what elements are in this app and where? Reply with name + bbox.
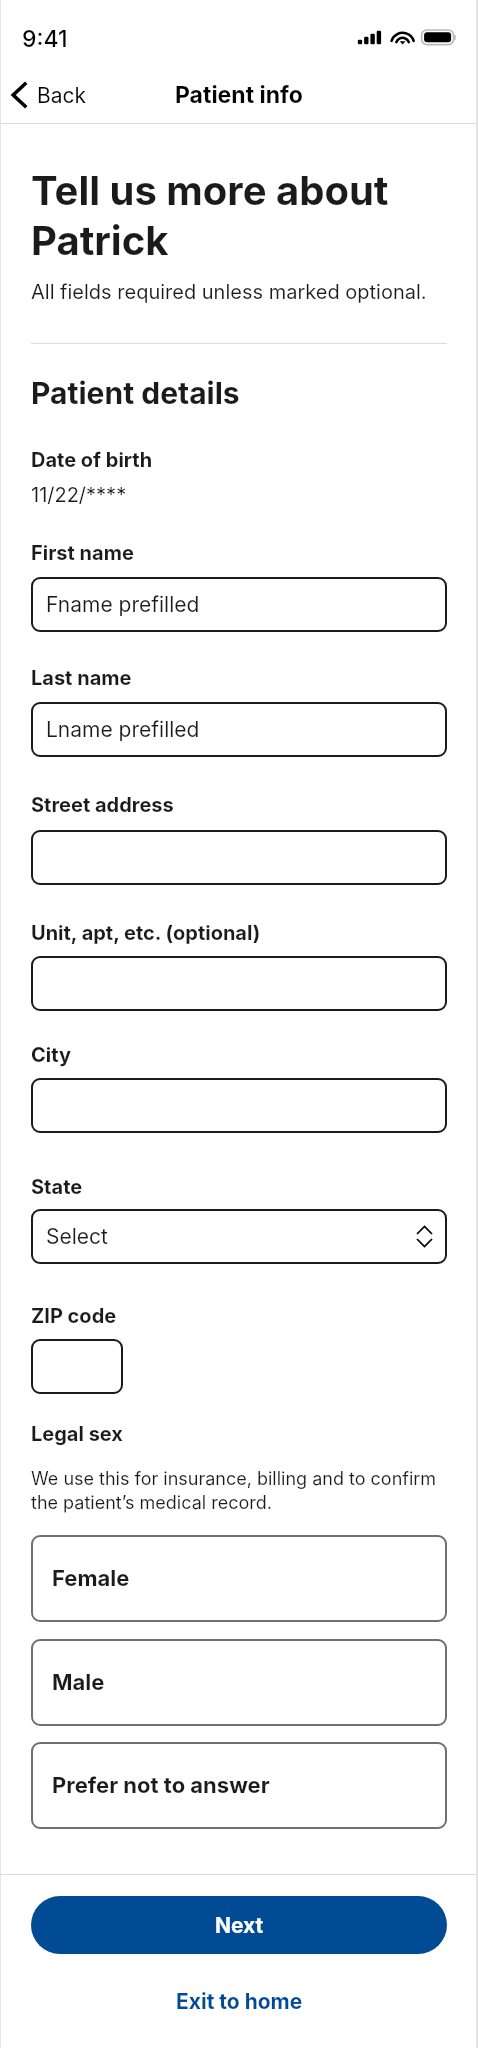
staticText: Next	[215, 1913, 264, 1938]
button[interactable]: Lname prefilled	[31, 702, 447, 757]
staticText: Female	[52, 1565, 130, 1592]
staticText: Lname prefilled	[46, 717, 200, 742]
staticText: All fields required unless marked option…	[31, 280, 427, 304]
staticText: Legal sex	[31, 1422, 123, 1446]
staticText: We use this for insurance, billing and t…	[31, 1468, 447, 1514]
staticText: City	[31, 1043, 72, 1067]
button[interactable]	[31, 956, 447, 1011]
staticText: Last name	[31, 666, 132, 690]
button[interactable]	[31, 1078, 447, 1133]
button[interactable]	[31, 1339, 123, 1394]
staticText: Unit, apt, etc. (optional)	[31, 921, 261, 945]
staticText: Fname prefilled	[46, 592, 200, 617]
other: Back	[12, 82, 27, 108]
staticText: Select	[46, 1224, 108, 1249]
staticText: Patient details	[31, 375, 240, 411]
staticText: 11/22/****	[31, 483, 127, 507]
button[interactable]: Select	[31, 1209, 447, 1264]
button[interactable]: Prefer not to answer	[31, 1742, 447, 1829]
button[interactable]: Male	[31, 1639, 447, 1726]
staticText: ZIP code	[31, 1304, 117, 1328]
staticText: Street address	[31, 793, 174, 817]
button[interactable]	[31, 830, 447, 885]
button[interactable]: Exit to home	[31, 1954, 447, 2048]
staticText: Patient info	[175, 81, 303, 109]
staticText: First name	[31, 541, 134, 565]
staticText: Back	[37, 83, 87, 108]
button[interactable]: Back	[0, 74, 99, 116]
staticText: Exit to home	[176, 1989, 303, 2014]
staticText: State	[31, 1175, 83, 1199]
button[interactable]: Fname prefilled	[31, 577, 447, 632]
staticText: Date of birth	[31, 448, 153, 472]
staticText: 9:41	[22, 25, 68, 53]
button[interactable]: Female	[31, 1535, 447, 1622]
staticText: Prefer not to answer	[52, 1772, 270, 1799]
staticText: Male	[52, 1669, 105, 1696]
staticText: Tell us more about Patrick	[31, 166, 447, 265]
button[interactable]: Next	[31, 1896, 447, 1954]
